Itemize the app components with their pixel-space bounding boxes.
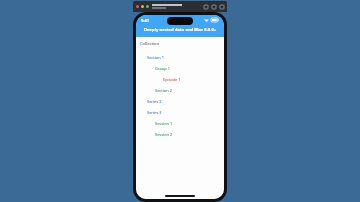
- staticText: Episode 1: [163, 77, 181, 82]
- button[interactable]: Window control: [141, 5, 144, 8]
- button[interactable]: Window control: [136, 5, 139, 8]
- button[interactable]: Series 3: [136, 107, 224, 118]
- staticText: Deeply nested data and Bloc 8.0.0+: [144, 27, 217, 33]
- button[interactable]: Group 1: [136, 63, 224, 74]
- button[interactable]: Series 2: [136, 96, 224, 107]
- staticText: Group 1: [155, 66, 170, 71]
- button[interactable]: Toolbar action: [219, 4, 224, 9]
- staticText: 9:41: [141, 18, 149, 23]
- button[interactable]: Session 1: [136, 118, 224, 129]
- other: Battery: [211, 18, 219, 22]
- staticText: Section 2: [155, 88, 172, 93]
- button[interactable]: Section 1: [136, 52, 224, 63]
- other: Wi-Fi: [204, 18, 209, 22]
- button[interactable]: Collection: [139, 40, 160, 47]
- button[interactable]: Toolbar action: [203, 4, 208, 9]
- staticText: Series 2: [147, 99, 162, 104]
- staticText: Session 1: [155, 121, 173, 126]
- staticText: Session 2: [155, 132, 173, 137]
- staticText: Collection: [140, 41, 159, 46]
- button[interactable]: Section 2: [136, 85, 224, 96]
- staticText: Section 1: [147, 55, 164, 60]
- button[interactable]: Window control: [146, 5, 149, 8]
- staticText: Series 3: [147, 110, 162, 115]
- button[interactable]: Session 2: [136, 129, 224, 140]
- button[interactable]: Episode 1: [136, 74, 224, 85]
- button[interactable]: Toolbar action: [211, 4, 216, 9]
